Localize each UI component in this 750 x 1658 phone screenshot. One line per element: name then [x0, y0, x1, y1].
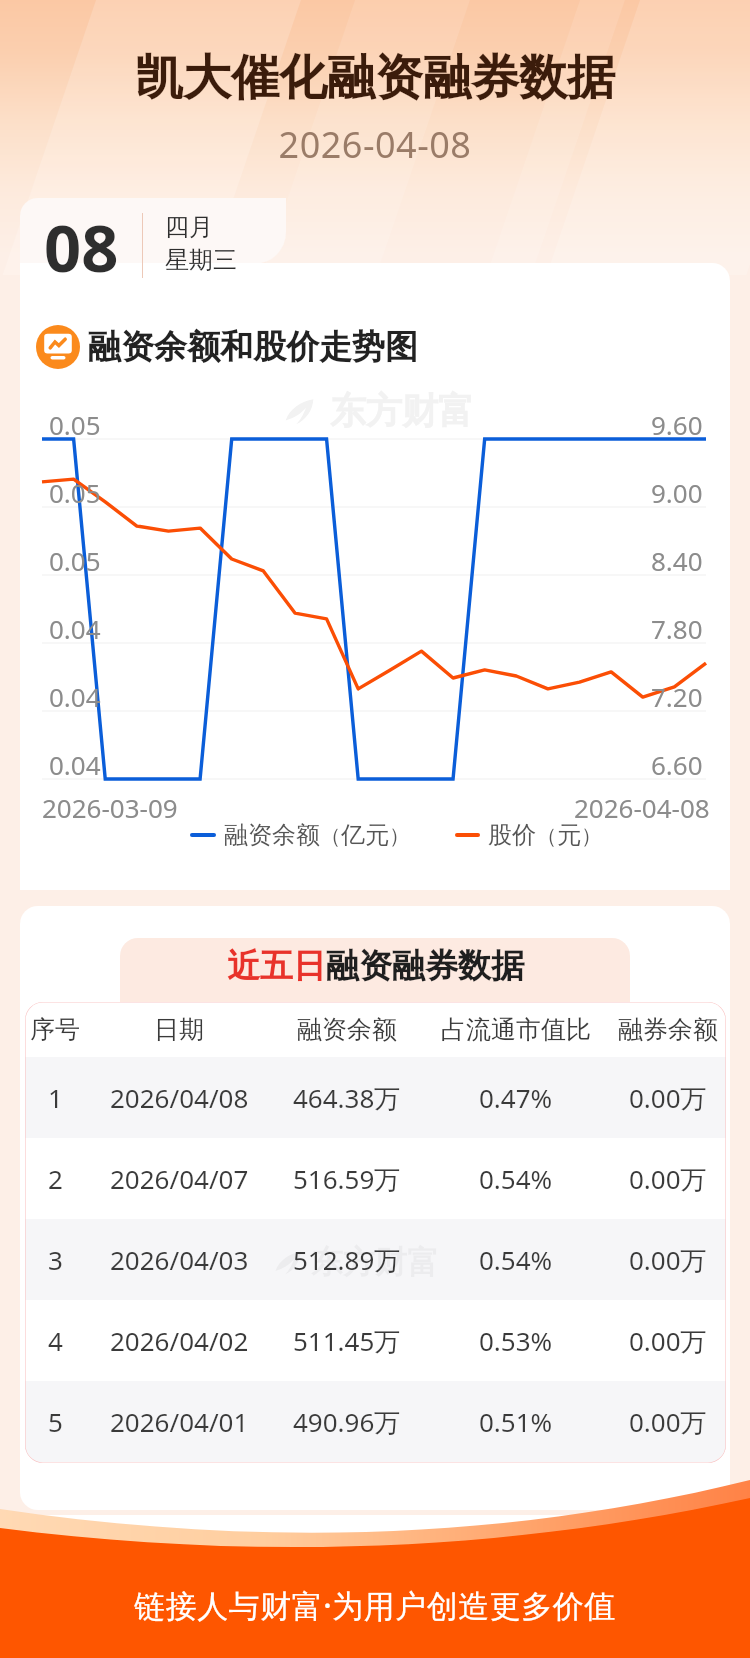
staticText: 08 [44, 203, 119, 292]
staticText: 日期 [154, 1014, 204, 1045]
staticText: 9.60 [651, 407, 703, 442]
staticText: 0.47% [479, 1080, 553, 1115]
staticText: 四月 [165, 212, 213, 242]
staticText: 3 [48, 1242, 63, 1277]
staticText: 7.80 [651, 611, 703, 646]
staticText: 0.00万 [629, 1242, 707, 1278]
staticText: 东方财富 [311, 1242, 439, 1282]
staticText: 0.04 [49, 679, 101, 714]
button[interactable]: 3 [25, 1219, 726, 1300]
staticText: 0.05 [49, 475, 101, 510]
staticText: 0.04 [49, 611, 101, 646]
staticText: 股价（元） [488, 820, 602, 850]
button[interactable]: 4 [25, 1300, 726, 1381]
staticText: 1 [48, 1080, 63, 1115]
staticText: 东方财富 [330, 388, 474, 433]
staticText: 4 [48, 1323, 63, 1358]
staticText: 2026/04/08 [110, 1080, 249, 1115]
staticText: 2026-04-08 [574, 790, 710, 825]
staticText: 8.40 [651, 543, 703, 578]
staticText: 0.54% [479, 1242, 553, 1277]
button[interactable]: 5 [25, 1381, 726, 1462]
staticText: 7.20 [651, 679, 703, 714]
staticText: 516.59万 [293, 1161, 401, 1197]
staticText: 2026/04/07 [110, 1161, 249, 1196]
staticText: 融券余额 [618, 1014, 718, 1045]
button[interactable]: 序号 [25, 1002, 726, 1057]
staticText: 2026-04-08 [0, 120, 750, 169]
staticText: 2026/04/01 [110, 1404, 249, 1439]
staticText: 0.05 [49, 543, 101, 578]
button[interactable]: 2 [25, 1138, 726, 1219]
staticText: 490.96万 [293, 1404, 401, 1440]
staticText: 5 [48, 1404, 63, 1439]
staticText: 序号 [30, 1014, 80, 1045]
staticText: 0.05 [49, 407, 101, 442]
staticText: 0.04 [49, 747, 101, 782]
staticText: 融资余额 [297, 1014, 397, 1045]
staticText: 融资余额和股价走势图 [88, 326, 418, 368]
staticText: 链接人与财富·为用户创造更多价值 [0, 1584, 750, 1626]
staticText: 464.38万 [293, 1080, 401, 1116]
staticText: 9.00 [651, 475, 703, 510]
staticText: 6.60 [651, 747, 703, 782]
staticText: 0.54% [479, 1161, 553, 1196]
staticText: 2026/04/03 [110, 1242, 249, 1277]
button[interactable]: 1 [25, 1057, 726, 1138]
staticText: 511.45万 [293, 1323, 401, 1359]
staticText: 0.53% [479, 1323, 553, 1358]
staticText: 512.89万 [293, 1242, 401, 1278]
staticText: 近五日融资融券数据 [227, 945, 524, 987]
button[interactable]: 融资余额和股价走势图 [36, 325, 418, 369]
staticText: 融资余额（亿元） [224, 820, 410, 850]
staticText: 占流通市值比 [441, 1014, 591, 1045]
staticText: 2 [48, 1161, 63, 1196]
staticText: 0.00万 [629, 1080, 707, 1116]
staticText: 2026/04/02 [110, 1323, 249, 1358]
staticText: 0.51% [479, 1404, 553, 1439]
staticText: 凯大催化融资融券数据 [0, 48, 750, 108]
staticText: 0.00万 [629, 1404, 707, 1440]
staticText: 星期三 [165, 245, 237, 275]
staticText: 2026-03-09 [42, 790, 178, 825]
staticText: 0.00万 [629, 1161, 707, 1197]
staticText: 0.00万 [629, 1323, 707, 1359]
